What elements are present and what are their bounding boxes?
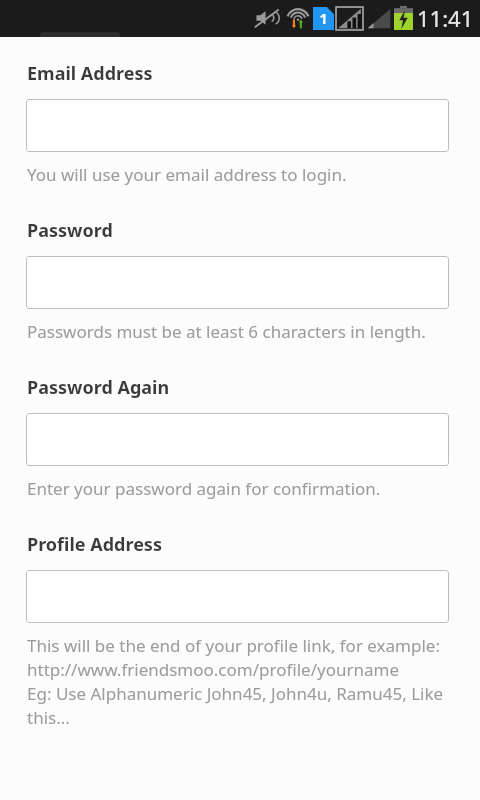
button[interactable] — [26, 570, 449, 623]
staticText: 11:41 — [417, 3, 474, 33]
staticText: Password Again — [27, 375, 170, 400]
staticText: Profile Address — [27, 532, 162, 557]
button[interactable] — [26, 413, 449, 466]
button[interactable] — [26, 256, 449, 309]
other: Clock 11:41 — [417, 3, 474, 33]
staticText: 1 — [319, 9, 328, 28]
other: Wi-Fi with data transfer — [286, 7, 310, 29]
staticText: Email Address — [27, 61, 153, 86]
staticText: You will use your email address to login… — [27, 163, 347, 186]
staticText: Passwords must be at least 6 characters … — [27, 320, 426, 343]
staticText: Enter your password again for confirmati… — [27, 477, 381, 500]
staticText: This will be the end of your profile lin… — [27, 634, 452, 729]
staticText: Password — [27, 218, 113, 243]
other: Mobile signal — [336, 7, 363, 30]
button[interactable] — [26, 99, 449, 152]
other: Second SIM signal — [367, 8, 391, 29]
other: SIM 1 — [313, 7, 334, 30]
other: Battery charging — [394, 6, 413, 30]
other: Silent mode — [255, 8, 279, 28]
